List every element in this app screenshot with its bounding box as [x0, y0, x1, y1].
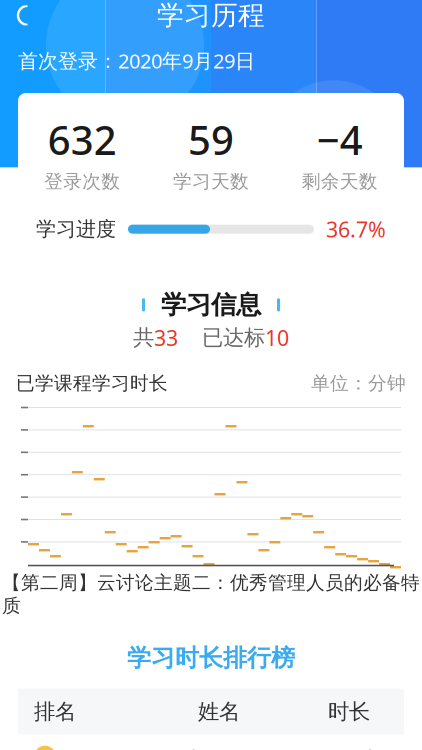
staticText: 1: [40, 746, 49, 750]
staticText: 【第二周】云讨论主题二：优秀管理人员的必备特质: [2, 571, 420, 617]
staticText: 已学课程学习时长: [16, 372, 168, 395]
staticText: 单位：分钟: [311, 372, 406, 395]
staticText: 姓名: [198, 699, 240, 725]
staticText: 59: [188, 113, 234, 166]
staticText: 学习进度: [36, 217, 116, 241]
staticText: 学习天数: [173, 170, 249, 193]
staticText: 10: [265, 323, 289, 352]
staticText: 632: [48, 113, 117, 166]
staticText: 排名: [34, 699, 76, 725]
staticText: 剩余天数: [302, 170, 378, 193]
staticText: 首次登录：2020年9月29日: [18, 47, 255, 74]
button[interactable]: 1: [18, 735, 404, 750]
staticText: 学习信息: [161, 289, 261, 320]
staticText: 已达标: [202, 324, 265, 351]
staticText: 36.7%: [326, 215, 386, 243]
staticText: 33: [154, 323, 178, 352]
staticText: 共: [133, 324, 154, 351]
staticText: 登录次数: [44, 170, 120, 193]
staticText: h3522: [191, 743, 247, 750]
staticText: 学习历程: [157, 0, 265, 32]
staticText: 学习时长排行榜: [127, 643, 295, 673]
staticText: 时长: [328, 699, 370, 725]
button[interactable]: 返回: [0, 0, 44, 37]
staticText: −4: [317, 113, 363, 166]
